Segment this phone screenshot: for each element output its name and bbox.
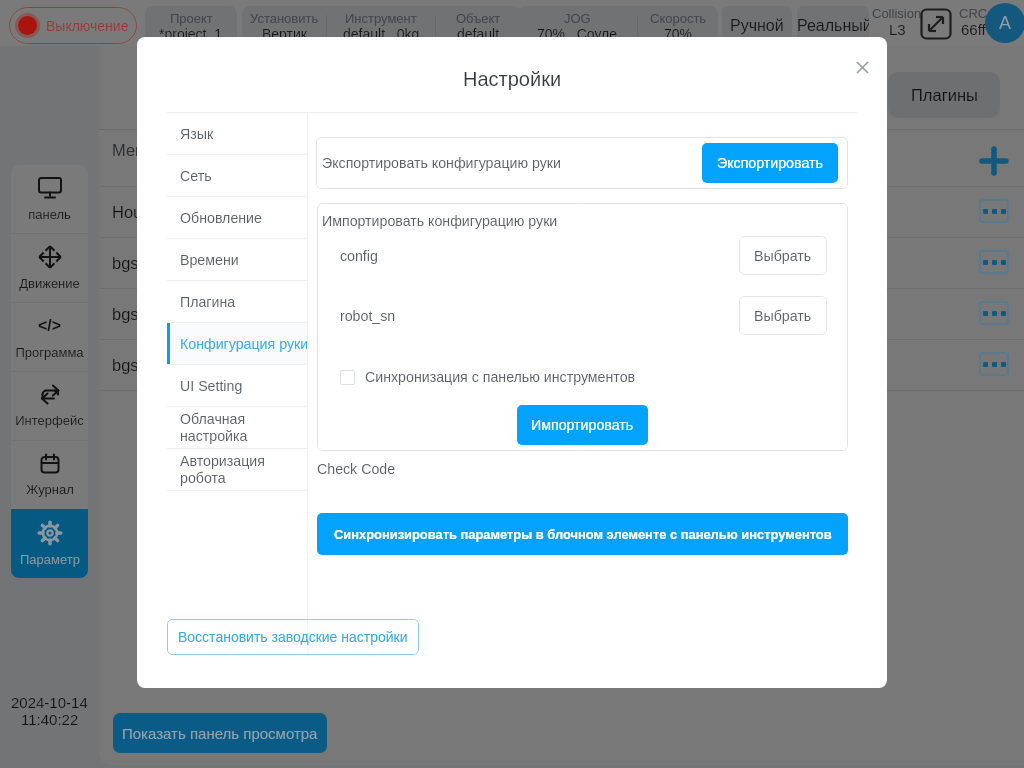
button[interactable]: панель — [11, 165, 88, 233]
staticText: Импортировать — [531, 417, 634, 433]
staticText: Экспортировать конфигурацию руки — [322, 155, 561, 171]
staticText: Параметр — [20, 551, 80, 566]
button[interactable]: Авторизация робота — [167, 449, 308, 490]
staticText: Синхронизировать параметры в блочном эле… — [334, 527, 832, 541]
staticText: *project_1 — [159, 26, 223, 42]
button[interactable]: Fullscreen — [920, 8, 952, 40]
staticText: Collision — [872, 6, 922, 21]
staticText: Показать панель просмотра — [122, 725, 318, 742]
button[interactable]: Язык — [167, 113, 308, 154]
button[interactable]: Показать панель просмотра — [113, 713, 327, 753]
staticText: Импортировать конфигурацию руки — [322, 213, 558, 229]
staticText: Настройки — [463, 68, 562, 90]
staticText: Облачная настройка — [180, 411, 248, 444]
button[interactable]: </> — [11, 302, 88, 371]
button[interactable]: Плагины — [888, 72, 1000, 118]
staticText: 70% Соуле — [537, 26, 618, 42]
staticText: Проект — [170, 11, 213, 26]
button[interactable]: Выключение — [9, 7, 137, 44]
staticText: JOG — [564, 11, 591, 26]
staticText: Сеть — [180, 168, 212, 184]
button[interactable]: Движение — [11, 233, 88, 302]
staticText: 2024-10-14 — [11, 694, 88, 711]
button[interactable]: Ручной — [722, 6, 792, 46]
button[interactable]: Установить — [242, 6, 521, 46]
button[interactable]: Сеть — [167, 155, 308, 196]
staticText: Журнал — [26, 482, 74, 497]
staticText: default — [457, 26, 500, 42]
button[interactable]: Обновление — [167, 197, 308, 238]
button[interactable]: Импортировать — [517, 405, 648, 445]
staticText: Авторизация робота — [180, 453, 265, 486]
staticText: Экспортировать — [717, 155, 823, 171]
button[interactable]: Выбрать — [739, 236, 827, 275]
button[interactable]: Проект — [145, 6, 237, 46]
button[interactable]: Журнал — [11, 440, 88, 509]
staticText: A — [999, 13, 1012, 33]
staticText: панель — [28, 207, 71, 222]
staticText: Выключение — [46, 18, 129, 34]
staticText: Установить — [250, 11, 319, 26]
staticText: Реальный — [797, 17, 869, 35]
button[interactable]: More options — [979, 301, 1009, 325]
staticText: Плагины — [911, 86, 978, 104]
button[interactable]: Close — [846, 51, 878, 83]
button[interactable]: Синхронизировать параметры в блочном эле… — [317, 513, 848, 555]
staticText: Объект — [456, 11, 501, 26]
button[interactable]: More options — [979, 199, 1009, 223]
button[interactable]: JOG — [518, 6, 718, 46]
button[interactable]: Account — [985, 3, 1024, 43]
staticText: Интерфейс — [15, 413, 84, 428]
button[interactable]: bgs0 — [112, 237, 1009, 288]
staticText: robot_sn — [340, 308, 396, 324]
staticText: 70% — [664, 26, 693, 42]
staticText: Инструмент — [345, 11, 417, 26]
button[interactable]: UI Setting — [167, 365, 308, 406]
button[interactable]: Времени — [167, 239, 308, 280]
staticText: Движение — [19, 276, 80, 291]
button[interactable]: Облачная настройка — [167, 407, 308, 448]
button[interactable]: Синхронизация с панелью инструментов — [340, 365, 636, 389]
button[interactable]: Интерфейс — [11, 371, 88, 440]
button[interactable]: More options — [979, 250, 1009, 274]
staticText: Выбрать — [754, 308, 812, 324]
button[interactable]: Add — [978, 145, 1010, 177]
staticText: Восстановить заводские настройки — [178, 629, 408, 645]
staticText: Ручной — [730, 17, 784, 35]
button[interactable]: Экспортировать — [702, 143, 838, 183]
button[interactable]: bgs0 — [112, 339, 1009, 390]
button[interactable]: Параметр — [11, 509, 88, 578]
staticText: default 0kg — [343, 26, 420, 42]
staticText: Времени — [180, 252, 239, 268]
staticText: bgs0 — [112, 254, 148, 272]
staticText: Обновление — [180, 210, 262, 226]
staticText: Параметр — [20, 552, 80, 567]
staticText: Программа — [15, 345, 84, 360]
staticText: Выбрать — [754, 248, 812, 264]
staticText: Check Code — [317, 461, 396, 477]
button[interactable]: More options — [979, 352, 1009, 376]
button[interactable]: bgs0 — [112, 288, 1009, 339]
staticText: Мен — [112, 141, 145, 159]
staticText: </> — [38, 317, 62, 335]
staticText: 66ff — [961, 21, 986, 38]
button[interactable]: House — [112, 186, 1009, 237]
staticText: Язык — [180, 126, 214, 142]
staticText: bgs0 — [112, 305, 148, 323]
staticText: Вертик — [262, 26, 307, 42]
staticText: L3 — [889, 21, 906, 38]
button[interactable]: Общие — [790, 72, 878, 118]
staticText: House — [112, 203, 160, 221]
button[interactable]: Выбрать — [739, 296, 827, 335]
button[interactable]: Плагина — [167, 281, 308, 322]
button[interactable]: Реальный — [797, 6, 869, 46]
button[interactable]: Конфигурация руки — [167, 323, 308, 364]
staticText: Плагина — [180, 294, 236, 310]
staticText: Синхронизация с панелью инструментов — [365, 369, 636, 385]
staticText: CRC — [959, 6, 988, 21]
staticText: Скорость — [650, 11, 707, 26]
button[interactable]: Параметр — [11, 509, 88, 578]
button[interactable]: Восстановить заводские настройки — [167, 619, 419, 655]
staticText: bgs0 — [112, 356, 148, 374]
